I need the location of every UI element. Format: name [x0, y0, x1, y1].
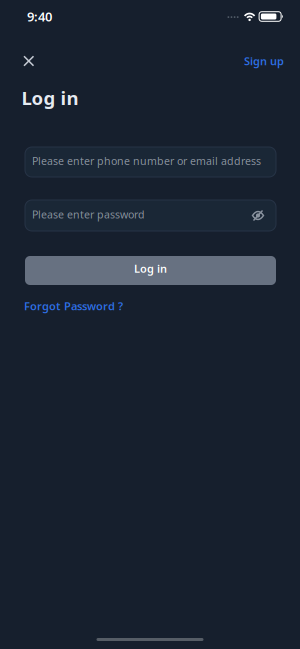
staticText: Please enter password [32, 207, 145, 222]
staticText: Please enter phone number or email addre… [32, 154, 261, 168]
staticText: Sign up [244, 53, 284, 68]
staticText: Log in [134, 261, 167, 276]
staticText: 9:40 [27, 8, 52, 25]
staticText: Log in [21, 85, 78, 110]
staticText: Forgot Password ? [24, 298, 123, 314]
